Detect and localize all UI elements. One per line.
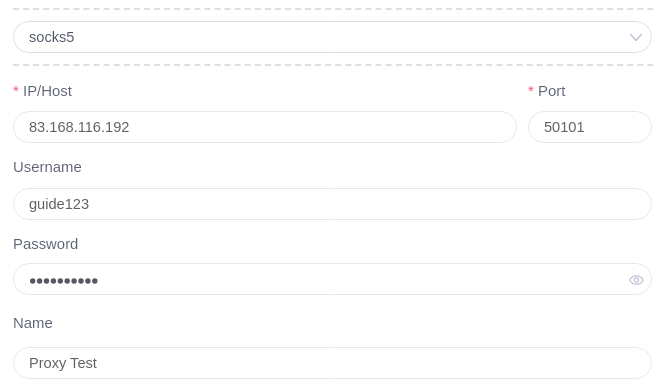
staticText: Proxy Test [29,355,97,371]
staticText: IP/Host [23,83,72,100]
button[interactable]: socks5 [13,21,652,53]
staticText: Name [13,315,53,332]
staticText: Password [13,236,79,253]
staticText: 50101 [544,119,585,135]
staticText: 83.168.116.192 [29,119,130,135]
staticText: Username [13,159,82,176]
button[interactable]: 50101 [528,111,652,143]
staticText: * [13,83,19,100]
button[interactable]: guide123 [13,188,652,220]
button[interactable]: Expand proxy protocol dropdown [625,26,647,48]
button[interactable]: 83.168.116.192 [13,111,517,143]
button[interactable] [13,263,652,295]
button[interactable]: Show password [625,269,647,291]
staticText: * [528,83,534,100]
staticText: Port [538,83,566,100]
staticText: guide123 [29,196,90,212]
staticText: socks5 [29,29,75,45]
button[interactable]: Proxy Test [13,347,652,379]
